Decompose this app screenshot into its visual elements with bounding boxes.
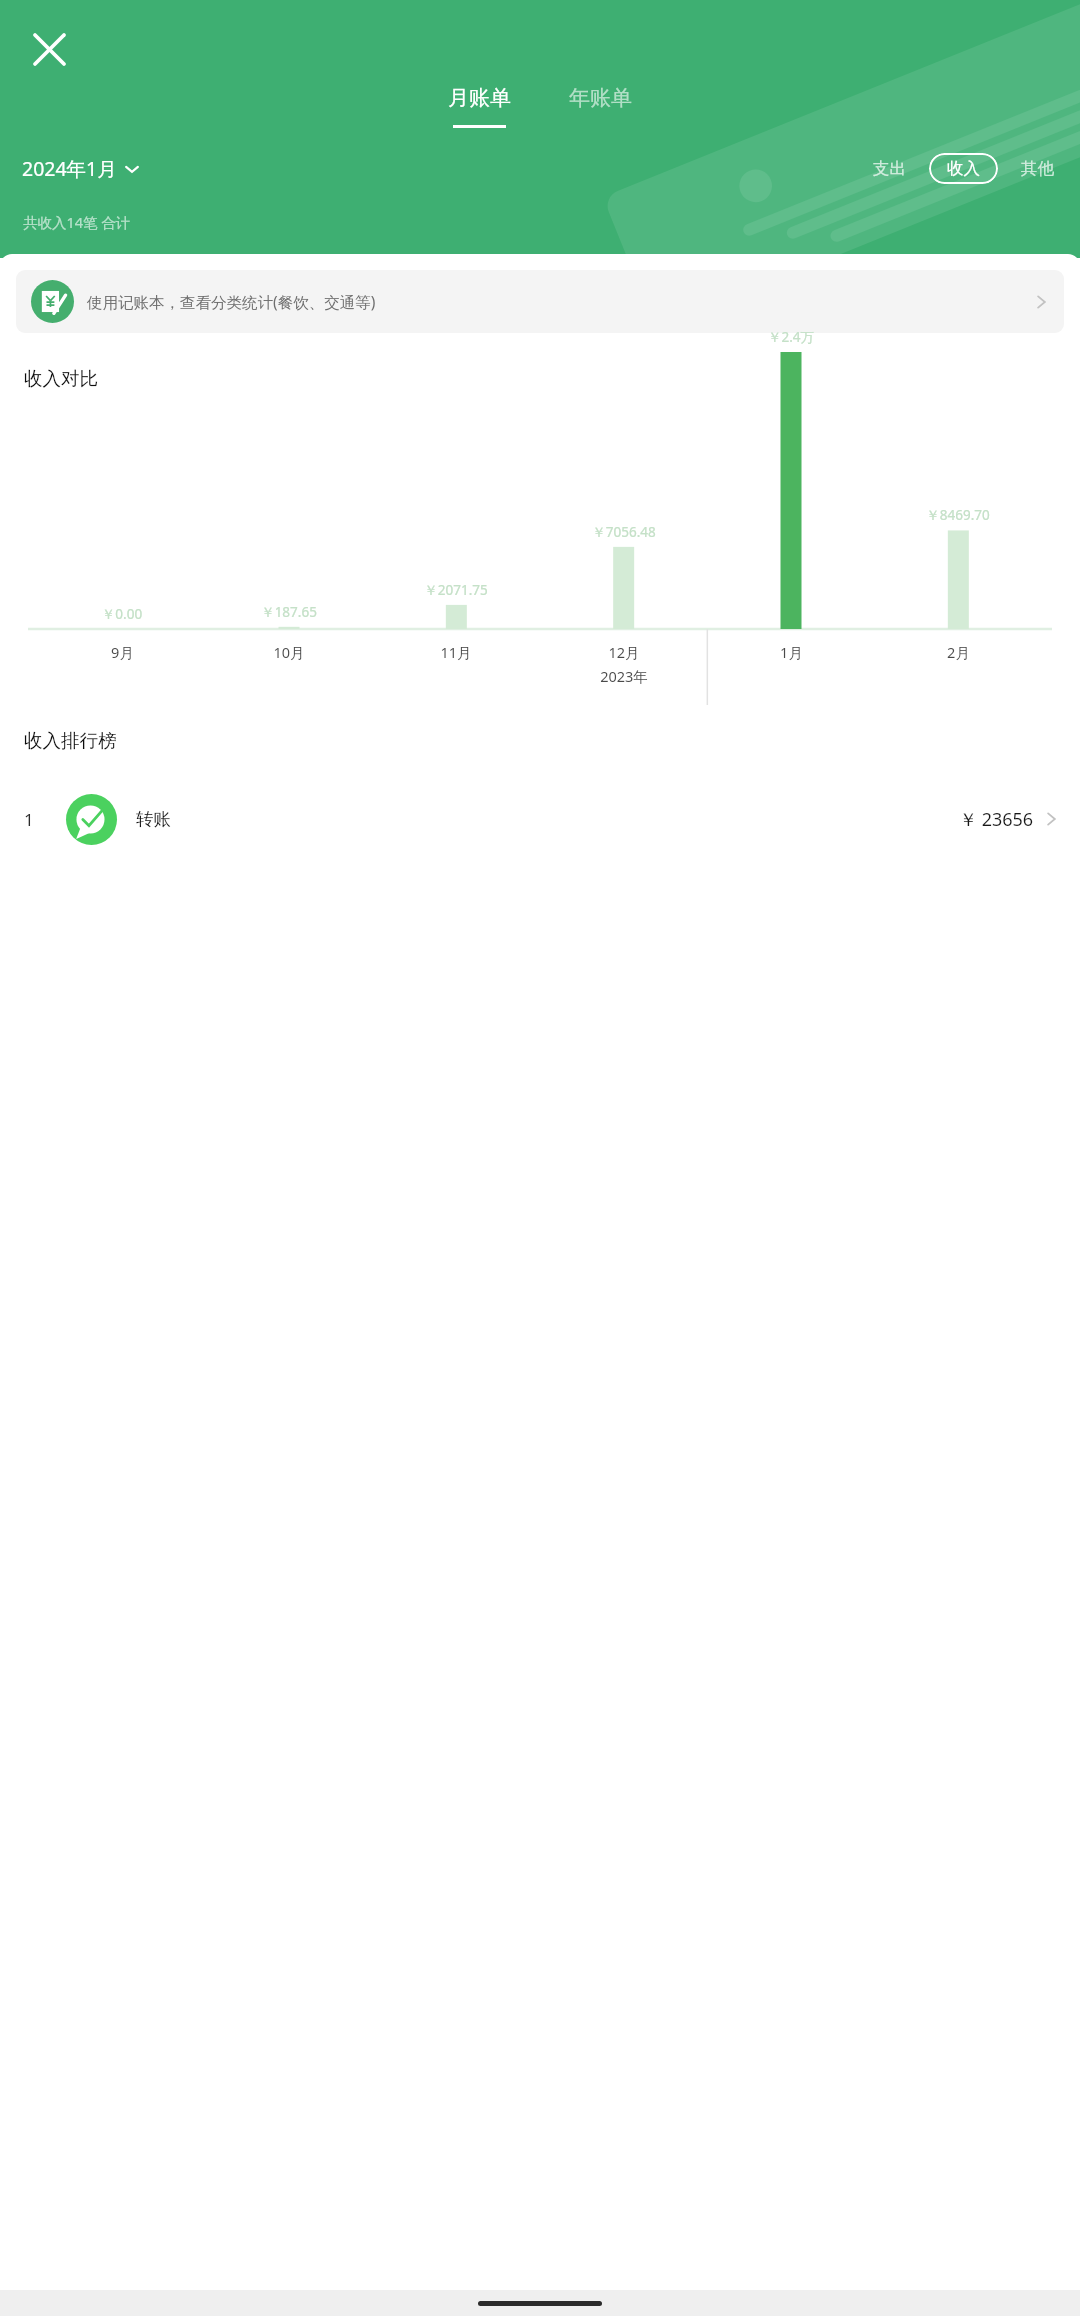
staticText: ￥: [21, 270, 53, 310]
button[interactable]: 支出: [867, 150, 912, 187]
staticText: 23798.64: [58, 243, 268, 310]
button[interactable]: 使用记账本，查看分类统计(餐饮、交通等): [16, 270, 1064, 333]
staticText: ￥0.00: [77, 605, 167, 623]
button[interactable]: 年账单: [551, 80, 650, 133]
staticText: 10月: [273, 642, 305, 662]
staticText: ￥2.4万: [746, 328, 836, 346]
button[interactable]: 其他: [1015, 150, 1060, 187]
staticText: 1月: [780, 642, 803, 662]
staticText: 转账: [136, 808, 171, 830]
staticText: ￥187.65: [244, 603, 334, 621]
staticText: 月账单: [448, 85, 511, 111]
button[interactable]: Close: [22, 22, 76, 76]
staticText: 2024年1月: [22, 155, 117, 182]
staticText: ￥7056.48: [579, 523, 669, 541]
staticText: 11月: [440, 642, 472, 662]
staticText: 共收入14笔 合计: [23, 212, 131, 232]
staticText: ￥8469.70: [913, 506, 1003, 524]
staticText: 使用记账本，查看分类统计(餐饮、交通等): [87, 291, 376, 312]
staticText: 2月: [947, 642, 970, 662]
staticText: 12月: [608, 642, 640, 662]
staticText: 9月: [111, 642, 134, 662]
staticText: ￥ 23656: [959, 807, 1034, 832]
staticText: 年账单: [569, 85, 632, 111]
staticText: 收入排行榜: [24, 729, 117, 752]
button[interactable]: 1: [0, 782, 1080, 856]
staticText: 收入对比: [24, 367, 98, 390]
staticText: 支出: [873, 158, 906, 179]
button[interactable]: 收入: [929, 153, 998, 184]
staticText: 1: [24, 808, 34, 831]
staticText: 收入: [947, 158, 980, 179]
staticText: 其他: [1021, 158, 1054, 179]
button[interactable]: 2024年1月: [22, 147, 139, 190]
button[interactable]: 月账单: [430, 80, 529, 133]
staticText: ￥2071.75: [411, 581, 501, 599]
staticText: 2023年: [600, 666, 648, 686]
